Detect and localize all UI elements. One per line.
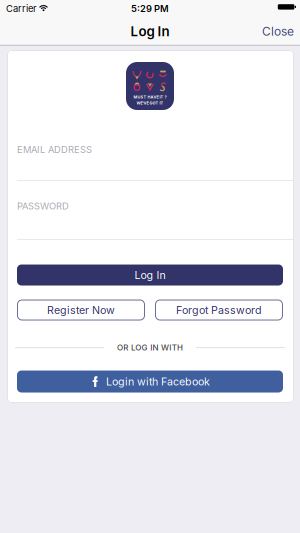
staticText: Register Now bbox=[47, 304, 115, 316]
staticText: Close bbox=[262, 24, 294, 39]
button[interactable]: Forgot Password bbox=[155, 299, 283, 320]
staticText: OR LOG IN WITH bbox=[117, 343, 183, 352]
staticText: MUST HAVE IT ? bbox=[133, 95, 166, 99]
staticText: 5:29 PM bbox=[131, 3, 169, 14]
staticText: WE'VE GOT IT bbox=[136, 101, 163, 105]
staticText: EMAIL ADDRESS bbox=[17, 144, 92, 155]
staticText: PASSWORD bbox=[17, 200, 69, 211]
button[interactable]: Register Now bbox=[17, 299, 145, 320]
button[interactable]: Login with Facebook bbox=[17, 370, 283, 392]
button[interactable]: Log In bbox=[17, 264, 283, 285]
staticText: Log In bbox=[134, 269, 165, 281]
staticText: Carrier bbox=[6, 3, 37, 14]
staticText: Forgot Password bbox=[176, 304, 262, 316]
button[interactable]: Close bbox=[256, 21, 300, 41]
staticText: Log In bbox=[130, 24, 169, 39]
staticText: Login with Facebook bbox=[106, 375, 210, 388]
